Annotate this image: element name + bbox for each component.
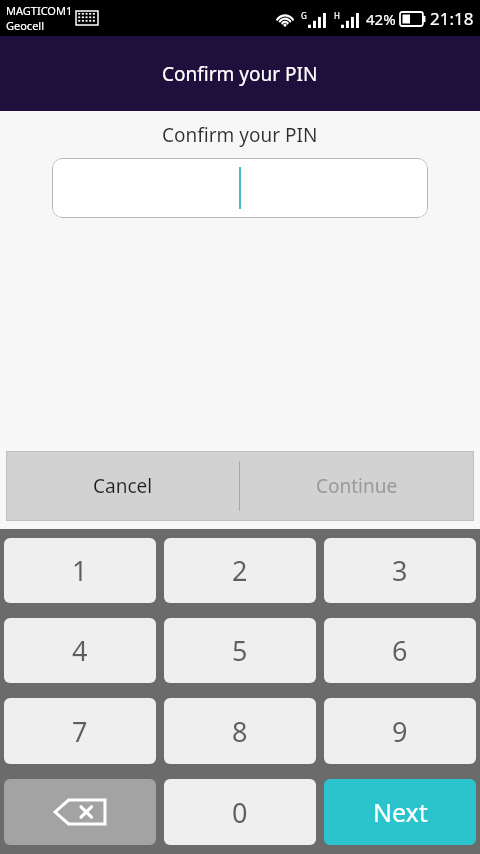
staticText: 7 xyxy=(72,713,88,750)
staticText: 9 xyxy=(392,713,408,750)
staticText: 4 xyxy=(72,632,88,669)
staticText: 1 xyxy=(72,552,88,589)
staticText: Confirm your PIN xyxy=(162,122,318,148)
staticText: 5 xyxy=(232,632,248,669)
staticText: 21:18 xyxy=(430,7,474,30)
staticText: 3 xyxy=(392,552,408,589)
staticText: 2 xyxy=(232,552,248,589)
button[interactable]: 2 xyxy=(164,538,316,603)
staticText: Confirm your PIN xyxy=(162,61,318,87)
button[interactable]: 9 xyxy=(324,698,476,764)
button[interactable]: 8 xyxy=(164,698,316,764)
button[interactable]: Cancel xyxy=(6,451,239,521)
staticText: MAGTICOM1 xyxy=(6,3,73,18)
staticText: 42% xyxy=(366,9,396,29)
staticText: H xyxy=(334,10,340,21)
button[interactable]: 6 xyxy=(324,618,476,683)
button[interactable]: 3 xyxy=(324,538,476,603)
staticText: G xyxy=(301,10,307,21)
button[interactable]: Next xyxy=(324,779,476,845)
button[interactable] xyxy=(52,158,428,218)
button[interactable]: 5 xyxy=(164,618,316,683)
button[interactable]: Continue xyxy=(240,451,474,521)
staticText: Cancel xyxy=(93,473,153,499)
button[interactable]: 4 xyxy=(4,618,156,683)
button[interactable]: Backspace xyxy=(4,779,156,845)
button[interactable]: 1 xyxy=(4,538,156,603)
button[interactable]: 7 xyxy=(4,698,156,764)
button[interactable]: 0 xyxy=(164,779,316,845)
staticText: 6 xyxy=(392,632,408,669)
staticText: 8 xyxy=(232,713,248,750)
staticText: 0 xyxy=(232,794,248,831)
staticText: Geocell xyxy=(6,18,45,33)
staticText: Next xyxy=(373,795,428,829)
staticText: Continue xyxy=(316,473,398,499)
